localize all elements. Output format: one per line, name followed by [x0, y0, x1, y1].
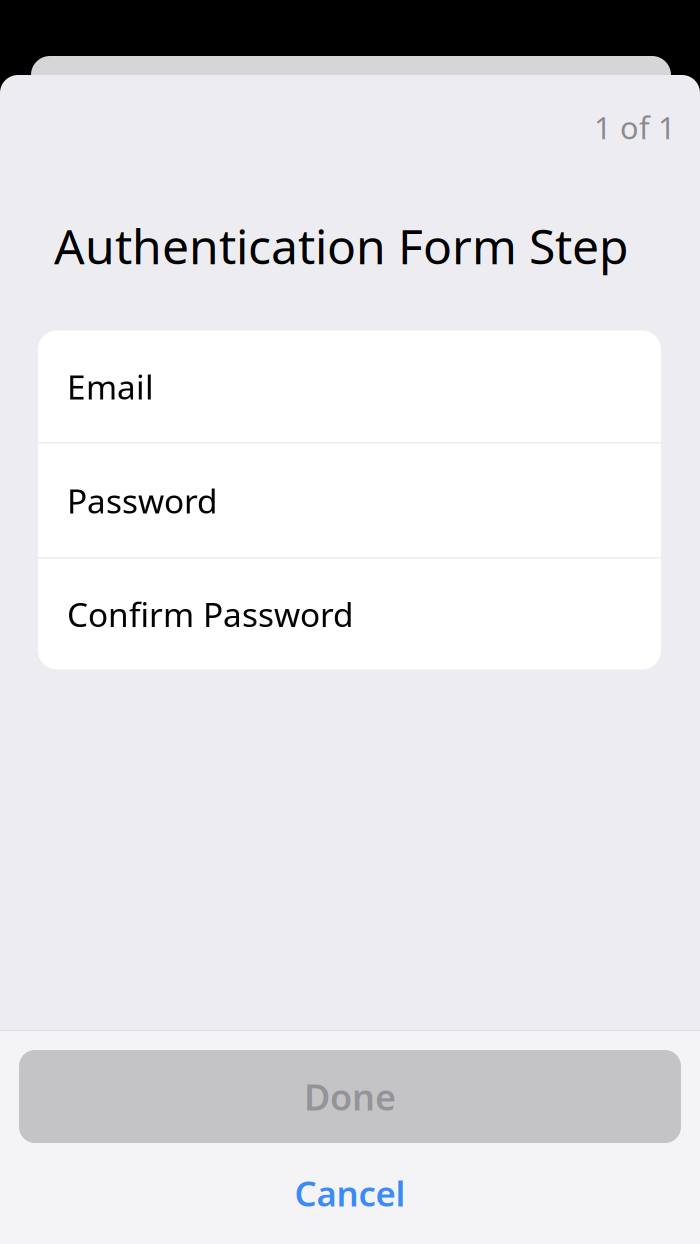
- button[interactable]: Email: [38, 330, 661, 443]
- staticText: Cancel: [294, 1170, 405, 1216]
- button[interactable]: Done: [19, 1050, 681, 1143]
- staticText: Done: [304, 1073, 396, 1120]
- button[interactable]: Confirm Password: [38, 558, 661, 669]
- staticText: 1 of 1: [594, 107, 676, 148]
- staticText: Password: [67, 478, 218, 523]
- staticText: Authentication Form Step: [54, 214, 629, 277]
- button[interactable]: Cancel: [0, 1165, 700, 1221]
- button[interactable]: Password: [38, 443, 661, 558]
- staticText: Email: [67, 364, 154, 409]
- staticText: Confirm Password: [67, 592, 354, 636]
